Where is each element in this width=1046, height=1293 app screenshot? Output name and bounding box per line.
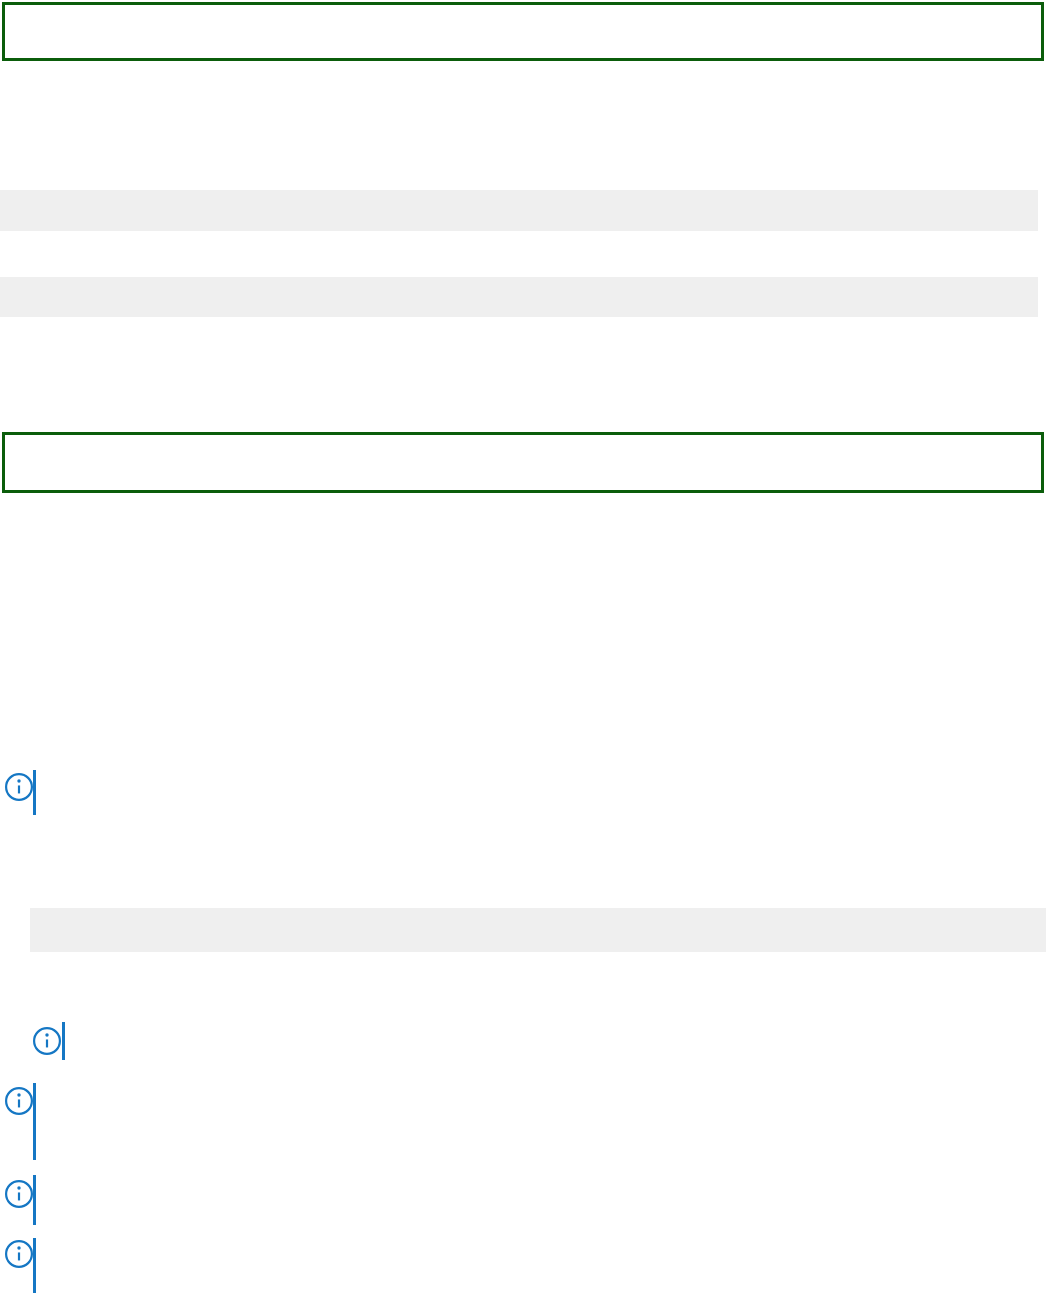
button[interactable]: Field one [2,2,1044,61]
button[interactable]: Information [5,1180,33,1208]
button[interactable]: Information [33,1027,61,1055]
button[interactable]: Information [5,1240,33,1268]
button[interactable]: Field two [2,432,1044,493]
button[interactable]: Information [5,773,33,801]
button[interactable]: Information [5,1087,33,1115]
